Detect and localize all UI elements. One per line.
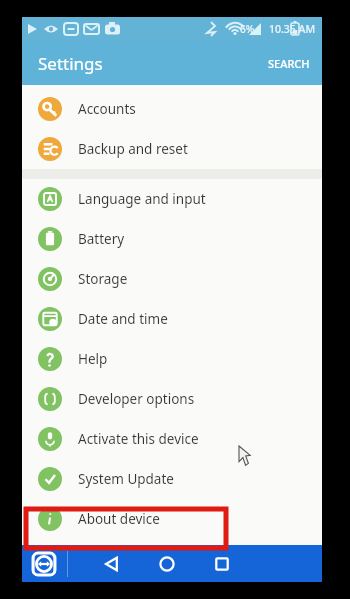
staticText: Activate this device: [78, 430, 199, 448]
staticText: Storage: [78, 270, 128, 288]
staticText: Battery: [78, 230, 125, 248]
staticText: 10.35 AM: [269, 22, 316, 36]
button[interactable]: Date and time: [22, 299, 322, 339]
button[interactable]: Developer options: [22, 379, 322, 419]
staticText: Help: [78, 350, 108, 368]
button[interactable]: About device: [22, 499, 322, 539]
staticText: Date and time: [78, 310, 168, 328]
button[interactable]: TeamViewer: [30, 550, 58, 578]
button[interactable]: Activate this device: [22, 419, 322, 459]
staticText: Developer options: [78, 390, 195, 408]
button[interactable]: Storage: [22, 259, 322, 299]
staticText: Settings: [38, 52, 103, 75]
button[interactable]: Home: [152, 549, 182, 579]
staticText: Accounts: [78, 100, 136, 118]
button[interactable]: Help: [22, 339, 322, 379]
staticText: 6%: [240, 22, 255, 36]
button[interactable]: Backup and reset: [22, 129, 322, 169]
staticText: Backup and reset: [78, 140, 188, 158]
button[interactable]: Back: [97, 549, 127, 579]
button[interactable]: Accounts: [22, 89, 322, 129]
button[interactable]: SEARCH: [256, 46, 322, 81]
button[interactable]: Language and input: [22, 179, 322, 219]
staticText: Language and input: [78, 190, 206, 208]
button[interactable]: Battery: [22, 219, 322, 259]
staticText: System Update: [78, 470, 174, 488]
button[interactable]: System Update: [22, 459, 322, 499]
button[interactable]: Recents: [207, 549, 237, 579]
staticText: SEARCH: [268, 56, 310, 71]
staticText: About device: [78, 510, 160, 528]
